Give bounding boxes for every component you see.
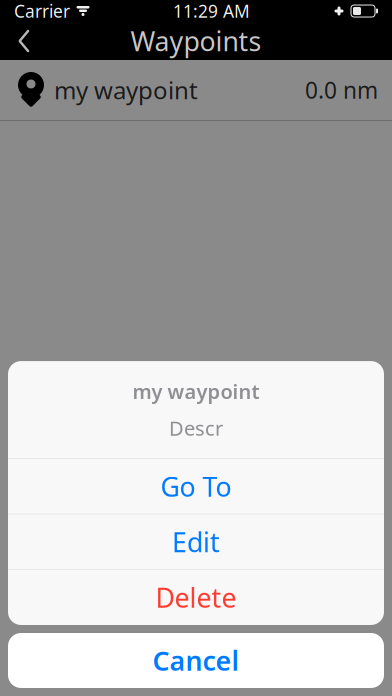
staticText: Delete <box>155 580 236 615</box>
staticText: my waypoint <box>132 378 259 405</box>
staticText: Go To <box>160 469 231 504</box>
button[interactable]: Cancel <box>8 633 384 688</box>
staticText: 0.0 nm <box>305 75 378 105</box>
staticText: Cancel <box>152 643 239 678</box>
staticText: Descr <box>169 415 223 441</box>
button[interactable]: Go To <box>8 459 384 514</box>
staticText: Edit <box>172 524 220 560</box>
button[interactable]: Back <box>0 22 48 60</box>
button[interactable]: my waypoint <box>0 60 392 120</box>
staticText: my waypoint <box>54 74 198 106</box>
button[interactable]: Delete <box>8 570 384 625</box>
staticText: 11:29 AM <box>173 0 250 22</box>
button[interactable]: Edit <box>8 514 384 569</box>
staticText: Carrier <box>14 0 70 22</box>
staticText: Waypoints <box>130 23 261 59</box>
